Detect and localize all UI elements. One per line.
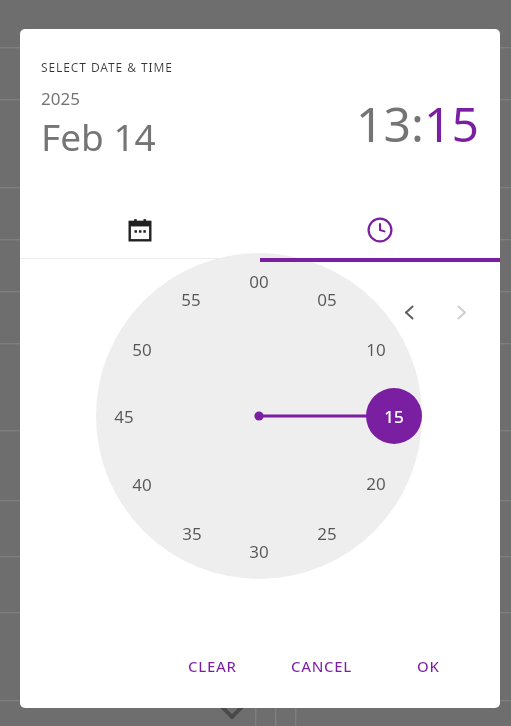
staticText: CLEAR bbox=[188, 656, 237, 676]
button[interactable]: 15 bbox=[374, 404, 414, 428]
staticText: 13 bbox=[356, 91, 411, 156]
staticText: 15 bbox=[384, 405, 404, 428]
staticText: 50 bbox=[132, 338, 152, 361]
button[interactable]: Feb 14 bbox=[41, 111, 156, 161]
button[interactable]: 20 bbox=[356, 471, 396, 495]
staticText: 15 bbox=[424, 91, 479, 156]
staticText: SELECT DATE & TIME bbox=[41, 59, 173, 75]
button[interactable]: 15 bbox=[424, 91, 479, 156]
staticText: 05 bbox=[317, 288, 337, 311]
button[interactable]: 45 bbox=[104, 404, 144, 428]
staticText: 45 bbox=[114, 405, 134, 428]
button[interactable]: 55 bbox=[171, 287, 211, 311]
staticText: CANCEL bbox=[291, 656, 353, 676]
staticText: : bbox=[411, 91, 424, 156]
button[interactable]: Previous bbox=[392, 295, 426, 329]
staticText: OK bbox=[417, 656, 440, 676]
button[interactable]: CLEAR bbox=[180, 648, 245, 684]
button[interactable]: CANCEL bbox=[283, 648, 361, 684]
button[interactable]: 50 bbox=[122, 337, 162, 361]
staticText: 00 bbox=[249, 270, 269, 293]
staticText: 25 bbox=[317, 522, 337, 545]
staticText: Feb 14 bbox=[41, 111, 156, 161]
button[interactable]: 30 bbox=[239, 539, 279, 563]
button[interactable]: Date tab bbox=[20, 201, 260, 258]
staticText: 35 bbox=[182, 522, 202, 545]
button[interactable]: 40 bbox=[122, 472, 162, 496]
staticText: 55 bbox=[181, 288, 201, 311]
staticText: 30 bbox=[249, 540, 269, 563]
staticText: 10 bbox=[366, 338, 386, 361]
button[interactable]: 13 bbox=[356, 91, 411, 156]
staticText: 40 bbox=[132, 473, 152, 496]
button[interactable]: 10 bbox=[356, 337, 396, 361]
button[interactable]: 2025 bbox=[41, 87, 80, 110]
button[interactable]: Next bbox=[444, 295, 478, 329]
button[interactable]: OK bbox=[409, 648, 448, 684]
button[interactable]: 00 bbox=[239, 269, 279, 293]
button[interactable]: 25 bbox=[307, 521, 347, 545]
button[interactable]: 05 bbox=[307, 287, 347, 311]
staticText: 20 bbox=[366, 472, 386, 495]
button[interactable]: 35 bbox=[172, 521, 212, 545]
staticText: 2025 bbox=[41, 87, 80, 110]
button[interactable]: Time tab bbox=[260, 201, 500, 258]
